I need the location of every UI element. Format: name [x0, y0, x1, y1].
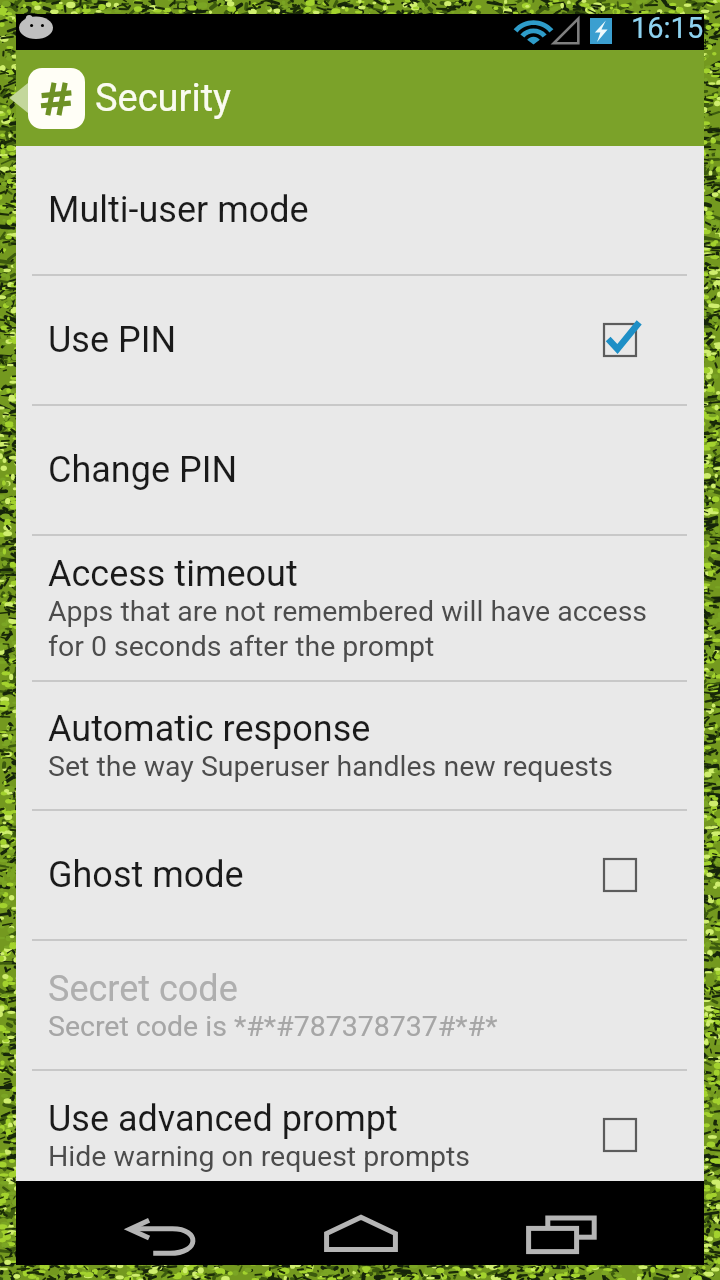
staticText: Hide warning on request prompts — [48, 1140, 470, 1173]
staticText: Ghost mode — [48, 854, 244, 896]
staticText: Change PIN — [48, 449, 238, 491]
staticText: Access timeout — [48, 553, 298, 595]
button[interactable]: Automatic response — [16, 682, 704, 809]
button[interactable]: Change PIN — [16, 406, 704, 534]
button[interactable]: Use advanced prompt — [16, 1071, 704, 1181]
button[interactable]: Use PIN — [16, 276, 704, 404]
other: Navigate up — [16, 83, 28, 113]
button[interactable]: Access timeout — [16, 536, 704, 680]
staticText: 16:15 — [631, 11, 704, 45]
staticText: Security — [95, 76, 232, 121]
button[interactable]: Back — [86, 1190, 194, 1256]
staticText: Use advanced prompt — [48, 1098, 398, 1140]
staticText: Use PIN — [48, 319, 177, 361]
staticText: Secret code is *#*#787378737#*#* — [48, 1010, 498, 1043]
staticText: Automatic response — [48, 708, 371, 750]
button[interactable]: Multi-user mode — [16, 146, 704, 274]
button[interactable]: Ghost mode — [16, 811, 704, 939]
staticText: Set the way Superuser handles new reques… — [48, 750, 614, 783]
button[interactable]: Home — [304, 1190, 448, 1256]
staticText: Secret code — [48, 968, 238, 1010]
staticText: Multi-user mode — [48, 189, 309, 231]
button[interactable]: Navigate up — [16, 50, 704, 146]
staticText: Apps that are not remembered will have a… — [48, 595, 648, 663]
button[interactable]: Secret code — [16, 941, 704, 1069]
button[interactable]: Recent apps — [506, 1190, 636, 1256]
